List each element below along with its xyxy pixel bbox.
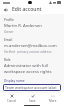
staticText: Edit account [12, 6, 42, 13]
staticText: Martin R. Andersen [4, 23, 42, 29]
button[interactable]: Team workspace account label [3, 84, 61, 91]
button[interactable]: Save [24, 93, 41, 104]
button[interactable]: Role [0, 56, 64, 77]
staticText: Team workspace account label [5, 85, 57, 90]
staticText: Profile [4, 18, 14, 22]
button[interactable]: Profile [0, 16, 64, 36]
button[interactable]: More options [44, 93, 61, 104]
staticText: Email [4, 38, 13, 42]
staticText: Cancel [7, 99, 17, 103]
staticText: m.andersen@mailbox.com [4, 43, 57, 49]
staticText: Display name [4, 79, 25, 83]
staticText: More [49, 99, 57, 103]
button[interactable]: Cancel [3, 93, 20, 104]
staticText: Owner [4, 30, 14, 34]
staticText: Save [29, 99, 36, 103]
button[interactable]: Back [2, 6, 10, 14]
button[interactable]: Email [0, 36, 64, 56]
staticText: Role [4, 58, 11, 62]
staticText: Verified · primary contact address [4, 50, 52, 54]
staticText: Administrator with full workspace access… [4, 63, 60, 75]
